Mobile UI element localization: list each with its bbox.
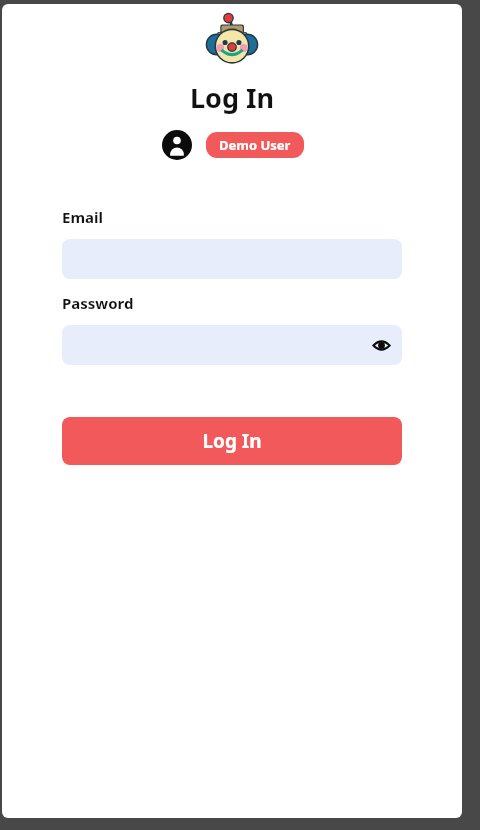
- button[interactable]: Account: [161, 129, 193, 161]
- staticText: Log In: [190, 79, 275, 116]
- button[interactable]: Demo User: [206, 132, 304, 158]
- staticText: Email: [62, 207, 103, 227]
- button[interactable]: Show password: [368, 332, 394, 358]
- button[interactable]: Log In: [62, 417, 402, 465]
- staticText: Demo User: [219, 136, 291, 154]
- staticText: Password: [62, 293, 134, 313]
- staticText: Log In: [202, 428, 262, 454]
- button[interactable]: Password field: [62, 325, 402, 365]
